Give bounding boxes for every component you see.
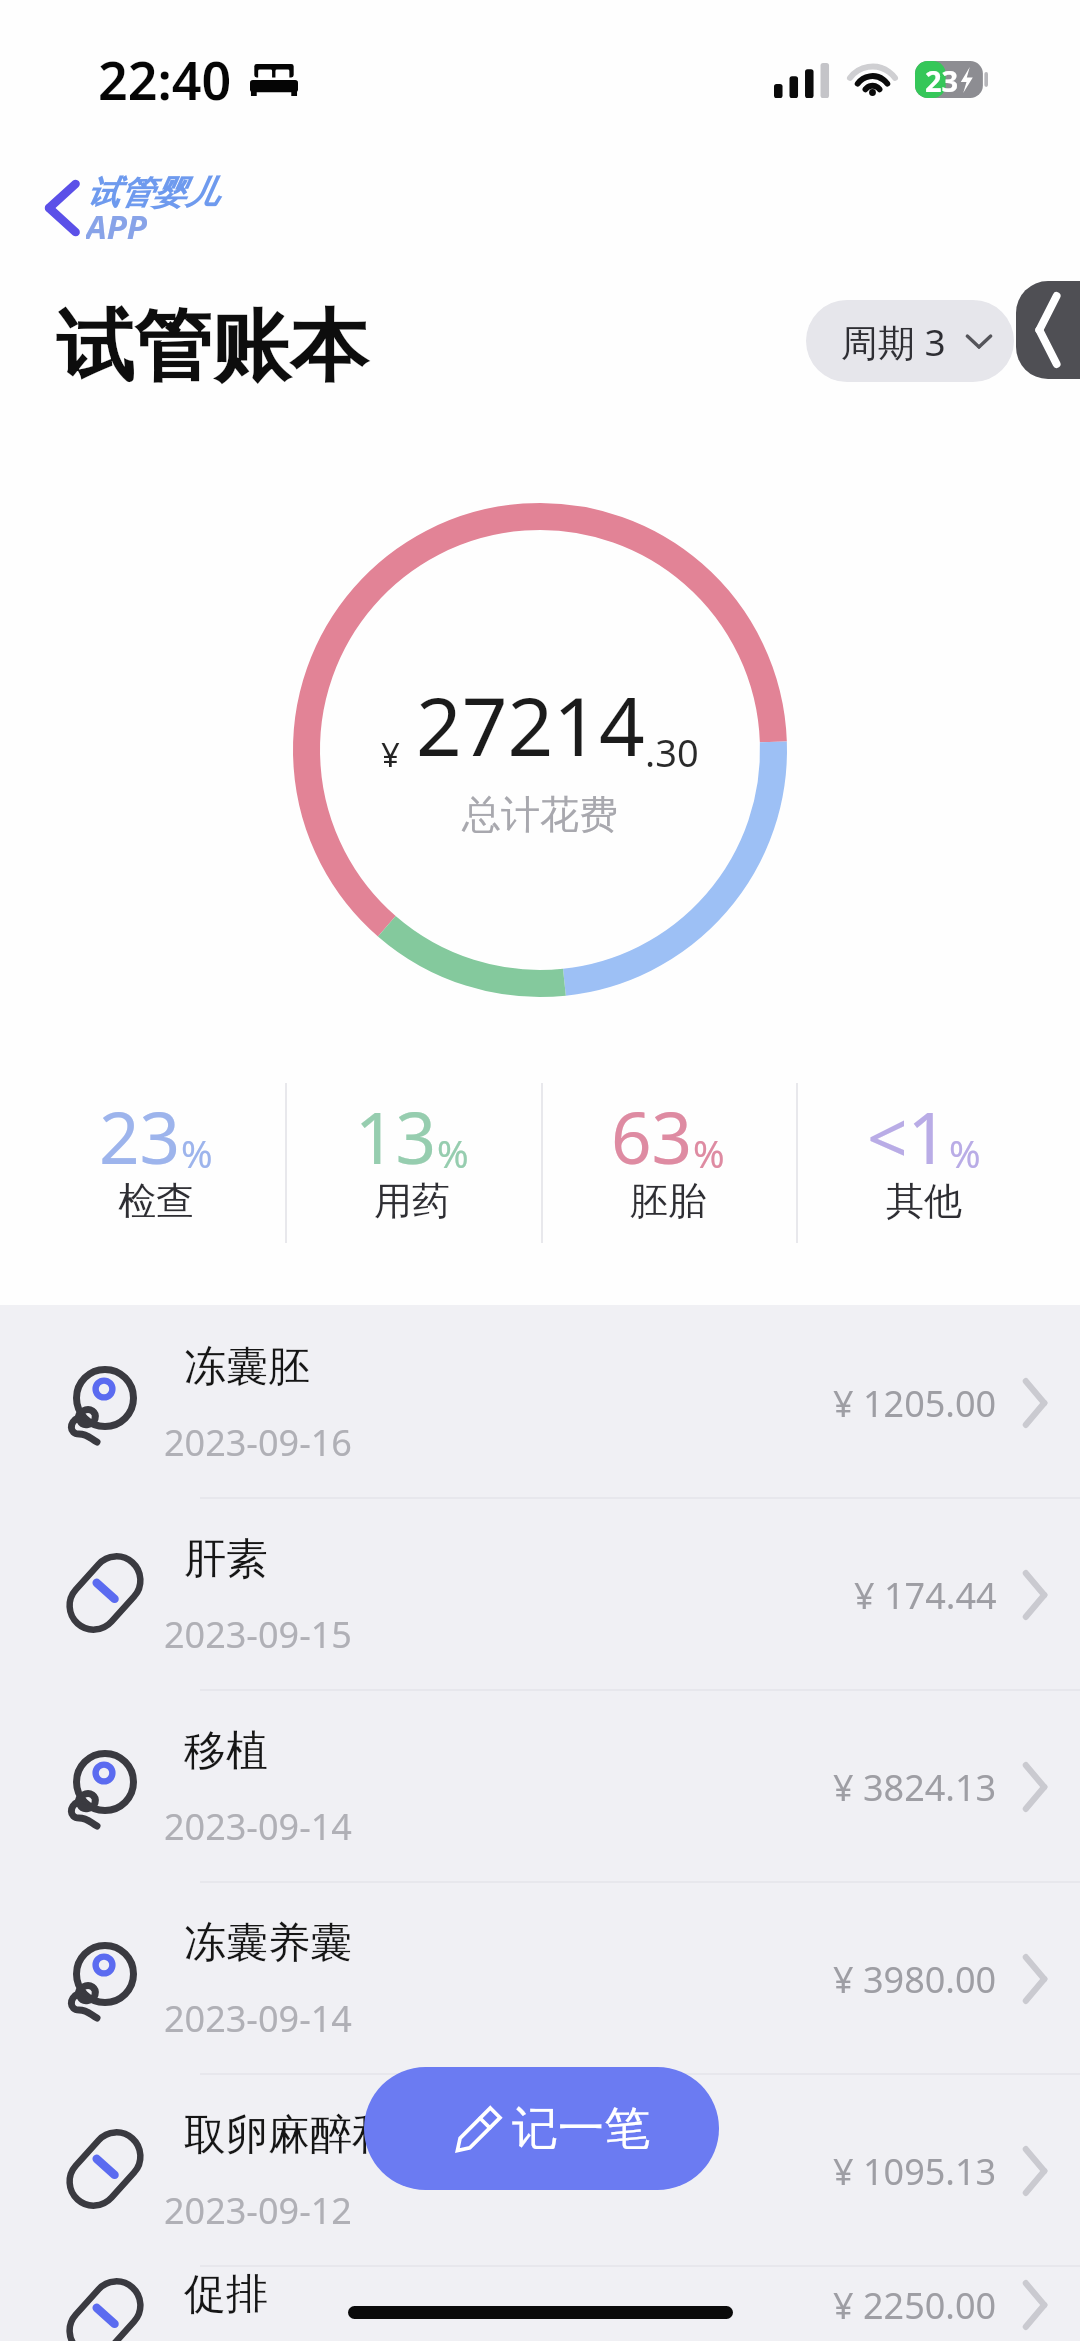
staticText: ¥ 2250.00 bbox=[833, 2281, 997, 2330]
staticText: 2023-09-15 bbox=[164, 1610, 352, 1659]
staticText: .30 bbox=[645, 726, 699, 778]
staticText: % bbox=[181, 1127, 213, 1179]
staticText: 23 bbox=[925, 61, 959, 98]
staticText: ¥ 174.44 bbox=[854, 1571, 997, 1620]
button[interactable]: 冻囊养囊 bbox=[0, 1881, 1080, 2073]
staticText: 23 bbox=[99, 1088, 181, 1185]
staticText: 试管账本 bbox=[56, 298, 368, 396]
staticText: 试管婴儿 bbox=[86, 172, 218, 214]
staticText: ¥ bbox=[381, 732, 400, 777]
staticText: 13 bbox=[355, 1088, 437, 1185]
staticText: 检查 bbox=[118, 1177, 194, 1225]
button[interactable]: 肝素 bbox=[0, 1497, 1080, 1689]
staticText: 用药 bbox=[374, 1177, 450, 1225]
staticText: 促排 bbox=[184, 2268, 268, 2321]
button[interactable]: 周期 3 bbox=[806, 300, 1014, 382]
staticText: 27214 bbox=[416, 670, 645, 779]
staticText: APP bbox=[86, 204, 147, 242]
staticText: 冻囊养囊 bbox=[184, 1917, 352, 1970]
staticText: 取卵麻醉和 bbox=[184, 2109, 394, 2162]
button[interactable]: 冻囊胚 bbox=[0, 1305, 1080, 1497]
staticText: ¥ 1095.13 bbox=[833, 2147, 997, 2196]
staticText: % bbox=[949, 1127, 981, 1179]
staticText: 肝素 bbox=[184, 1533, 268, 1586]
staticText: 2023-09-12 bbox=[164, 2186, 352, 2235]
staticText: 2023-09-16 bbox=[164, 1418, 352, 1467]
staticText: 2023-09-14 bbox=[164, 1994, 352, 2043]
staticText: ¥ 1205.00 bbox=[833, 1379, 997, 1428]
staticText: 冻囊胚 bbox=[184, 1341, 310, 1394]
button[interactable]: 取卵麻醉和 bbox=[0, 2073, 1080, 2265]
staticText: % bbox=[437, 1127, 469, 1179]
staticText: 63 bbox=[611, 1088, 693, 1185]
button[interactable]: Back bbox=[18, 168, 106, 248]
button[interactable]: 促排 bbox=[0, 2265, 1080, 2341]
staticText: 总计花费 bbox=[462, 790, 618, 839]
button[interactable]: Back bbox=[1016, 281, 1080, 379]
button[interactable]: 移植 bbox=[0, 1689, 1080, 1881]
staticText: 其他 bbox=[886, 1177, 962, 1225]
staticText: 22:40 bbox=[98, 44, 232, 115]
staticText: 胚胎 bbox=[630, 1177, 706, 1225]
staticText: % bbox=[693, 1127, 725, 1179]
staticText: 周期 3 bbox=[841, 316, 946, 367]
staticText: <1 bbox=[867, 1088, 949, 1185]
staticText: 2023-09-14 bbox=[164, 1802, 352, 1851]
button[interactable]: 记一笔 bbox=[364, 2067, 719, 2190]
staticText: 记一笔 bbox=[512, 2100, 650, 2158]
staticText: ¥ 3824.13 bbox=[833, 1763, 997, 1812]
staticText: 移植 bbox=[184, 1725, 268, 1778]
staticText: ¥ 3980.00 bbox=[833, 1955, 997, 2004]
